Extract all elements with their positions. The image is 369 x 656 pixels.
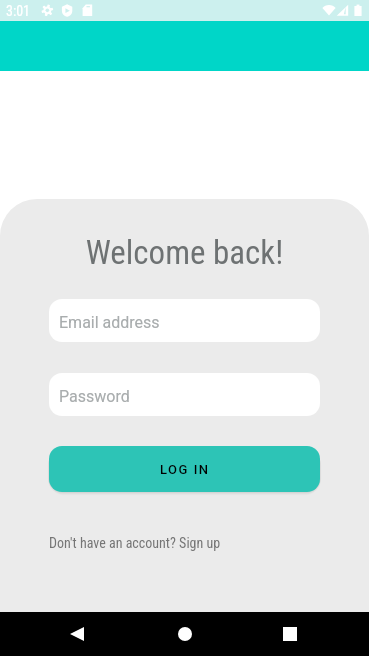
button[interactable]: Password: [49, 373, 320, 416]
staticText: Don't have an account? Sign up: [49, 535, 221, 551]
button[interactable]: Don't have an account? Sign up: [49, 535, 221, 551]
staticText: LOG IN: [160, 462, 210, 477]
button[interactable]: LOG IN: [49, 446, 320, 492]
staticText: Password: [59, 387, 130, 406]
button[interactable]: Back: [55, 612, 99, 656]
staticText: Email address: [59, 313, 160, 332]
button[interactable]: Home: [163, 612, 207, 656]
staticText: 3:01: [6, 3, 31, 19]
button[interactable]: Recent apps: [268, 612, 312, 656]
staticText: Welcome back!: [0, 233, 369, 272]
button[interactable]: Email address: [49, 299, 320, 342]
